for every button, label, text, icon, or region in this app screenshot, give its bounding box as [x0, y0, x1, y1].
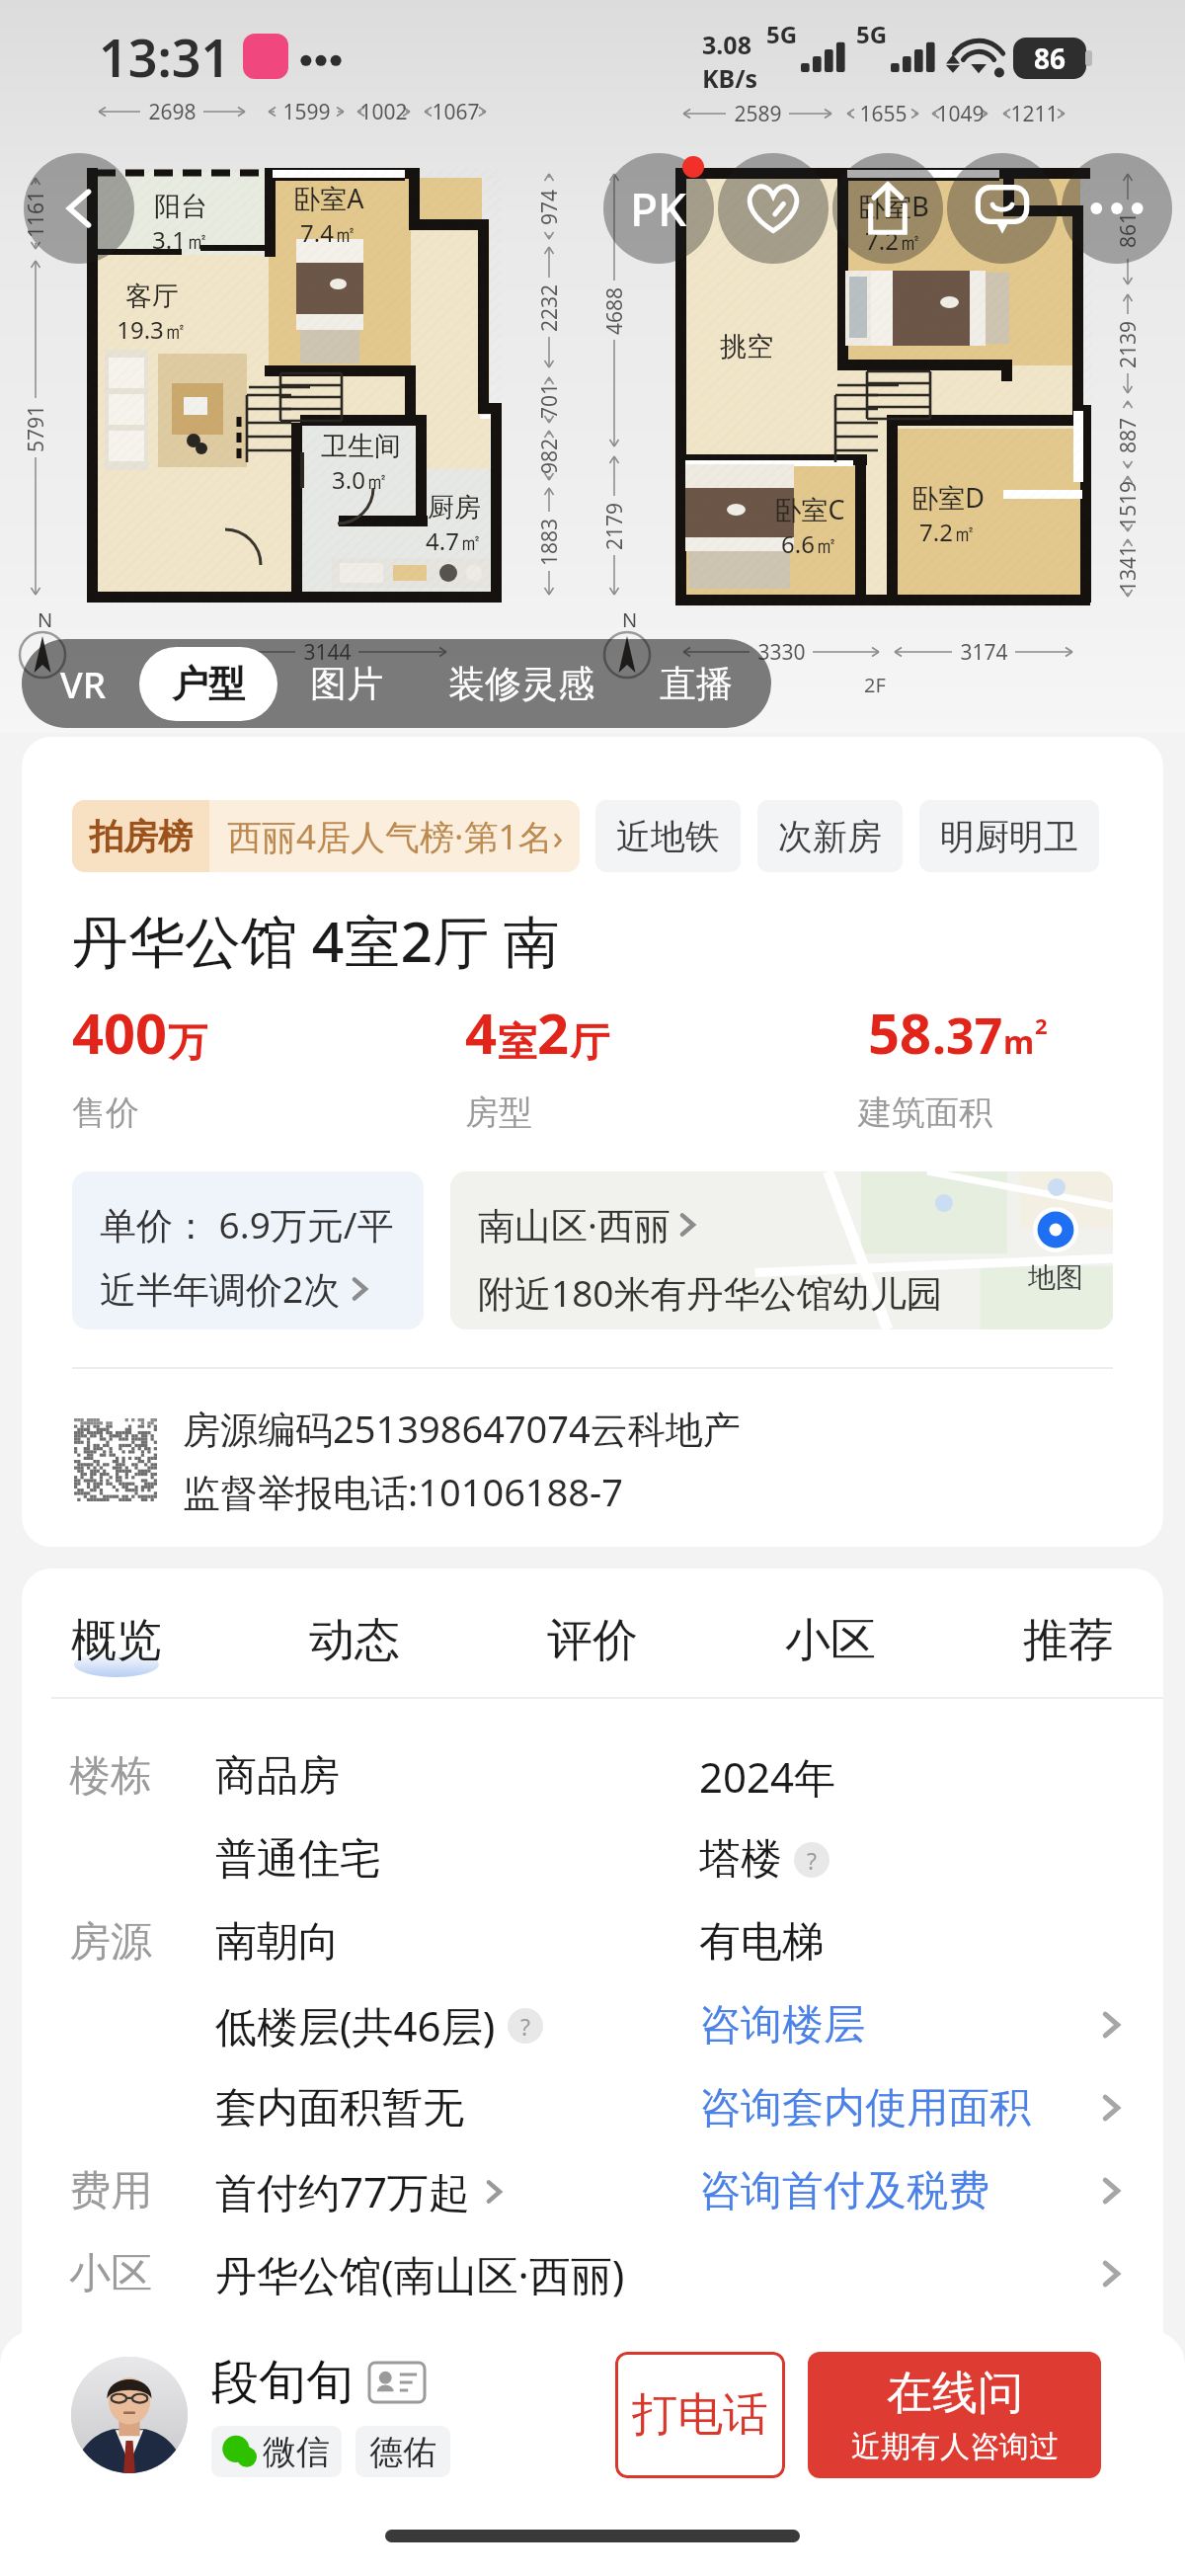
staticText: 861 — [1114, 211, 1143, 248]
button[interactable]: 装修灵感 — [416, 647, 627, 721]
staticText: 2232 — [535, 283, 564, 332]
button[interactable]: Chat — [947, 153, 1058, 264]
staticText: 售价 — [72, 1091, 139, 1134]
staticText: 58 — [868, 995, 932, 1070]
button[interactable]: 小区 — [22, 2232, 1163, 2315]
staticText: 400 — [72, 995, 168, 1070]
button[interactable]: Back — [24, 153, 134, 264]
staticText: 德佑 — [369, 2431, 436, 2473]
staticText: 段旬旬 — [211, 2353, 354, 2412]
staticText: 动态 — [309, 1612, 400, 1669]
staticText: N — [622, 606, 638, 633]
button[interactable]: 户型 — [139, 647, 277, 721]
button[interactable]: 评价 — [537, 1612, 648, 1669]
button[interactable]: Agent licence — [369, 2363, 425, 2402]
button[interactable]: 近地铁 — [595, 800, 741, 872]
staticText: 19.3㎡ — [117, 313, 188, 346]
staticText: 3.08 — [702, 28, 751, 61]
staticText: 2 — [1035, 1010, 1048, 1040]
staticText: 普通住宅 — [215, 1833, 381, 1886]
button[interactable]: 直播 — [627, 647, 765, 721]
staticText: 4688 — [600, 286, 629, 335]
staticText: 挑空 — [720, 330, 773, 363]
staticText: 厨房 — [428, 491, 481, 524]
staticText: 1341 — [1114, 544, 1143, 593]
staticText: 5G — [856, 18, 888, 50]
button[interactable]: 在线问 — [808, 2352, 1101, 2478]
button[interactable]: 图片 — [277, 647, 416, 721]
button[interactable]: 动态 — [299, 1612, 410, 1669]
staticText: 3144 — [303, 638, 352, 667]
staticText: 图片 — [310, 661, 383, 707]
staticText: 推荐 — [1023, 1612, 1114, 1669]
staticText: 3174 — [960, 638, 1008, 667]
staticText: 建筑面积 — [858, 1091, 992, 1134]
button[interactable]: 推荐 — [1013, 1612, 1124, 1669]
staticText: 5G — [766, 18, 798, 50]
staticText: 3330 — [757, 638, 806, 667]
staticText: 丹华公馆(南山区·西丽) — [215, 2246, 625, 2302]
staticText: 咨询套内使用面积 — [699, 2082, 1031, 2134]
staticText: 2139 — [1114, 320, 1143, 368]
button[interactable]: Favorite — [718, 153, 829, 264]
button[interactable]: 房源 — [22, 1900, 1163, 1983]
staticText: ? — [520, 2011, 530, 2042]
staticText: 拍房榜 — [89, 815, 193, 858]
staticText: 982 — [535, 438, 564, 474]
staticText: 客厅 — [125, 280, 179, 313]
staticText: m — [1003, 1020, 1035, 1064]
button[interactable]: 楼栋 — [22, 1734, 1163, 1817]
staticText: 套内面积暂无 — [215, 2082, 464, 2134]
button[interactable]: More — [1062, 153, 1172, 264]
button[interactable]: 概览 — [61, 1612, 172, 1669]
staticText: 1049 — [936, 100, 985, 128]
staticText: 1519 — [1114, 480, 1143, 528]
staticText: 13:31 — [99, 22, 231, 92]
button[interactable]: 普通住宅 — [22, 1817, 1163, 1900]
button[interactable]: 单价： 6.9万元/平 — [72, 1171, 424, 1329]
staticText: 1211 — [1010, 100, 1059, 128]
staticText: 次新房 — [778, 815, 882, 858]
button[interactable]: 拍房榜 — [72, 800, 580, 872]
button[interactable]: 南山区·西丽 — [450, 1171, 1113, 1329]
staticText: 南朝向 — [215, 1916, 340, 1969]
staticText: 1655 — [859, 100, 908, 128]
staticText: 在线问 — [887, 2365, 1023, 2422]
staticText: 1883 — [535, 518, 564, 566]
button[interactable]: Agent avatar — [71, 2357, 188, 2473]
staticText: 7.2㎡ — [865, 224, 922, 257]
staticText: 1002 — [359, 98, 408, 126]
button[interactable]: 小区 — [775, 1612, 886, 1669]
button[interactable]: 次新房 — [757, 800, 903, 872]
button[interactable]: 微信 — [211, 2426, 342, 2477]
button[interactable]: 费用 — [22, 2149, 1163, 2232]
button[interactable]: PK compare — [603, 153, 714, 264]
button[interactable]: 德佑 — [355, 2426, 450, 2477]
staticText: 2589 — [734, 100, 782, 128]
staticText: 户型 — [172, 661, 245, 707]
staticText: 装修灵感 — [448, 661, 594, 707]
staticText: 4.7㎡ — [426, 524, 483, 557]
staticText: 丹华公馆 4室2厅 南 — [72, 902, 560, 979]
staticText: 南山区·西丽 — [478, 1199, 671, 1249]
staticText: 卧室B — [858, 188, 929, 224]
button[interactable]: 低楼层(共46层) — [22, 1983, 1163, 2066]
staticText: .37 — [932, 1002, 1003, 1069]
staticText: 阳台 — [154, 190, 207, 223]
staticText: 有电梯 — [699, 1916, 824, 1969]
staticText: PK — [630, 178, 687, 240]
button[interactable]: Share — [832, 153, 943, 264]
staticText: 概览 — [71, 1612, 162, 1669]
button[interactable]: 套内面积暂无 — [22, 2066, 1163, 2149]
button[interactable]: 打电话 — [615, 2352, 785, 2478]
button[interactable]: 明厨明卫 — [919, 800, 1099, 872]
staticText: 西丽4居人气榜·第1名› — [227, 813, 564, 860]
staticText: 房源 — [69, 1916, 152, 1969]
staticText: 低楼层(共46层) — [215, 1997, 496, 2053]
button[interactable]: VR — [28, 645, 139, 722]
staticText: 房源编码251398647074云科地产 — [183, 1403, 741, 1454]
staticText: 4 — [465, 995, 498, 1070]
staticText: VR — [60, 659, 107, 708]
staticText: 评价 — [547, 1612, 638, 1669]
staticText: 咨询楼层 — [699, 1999, 865, 2052]
